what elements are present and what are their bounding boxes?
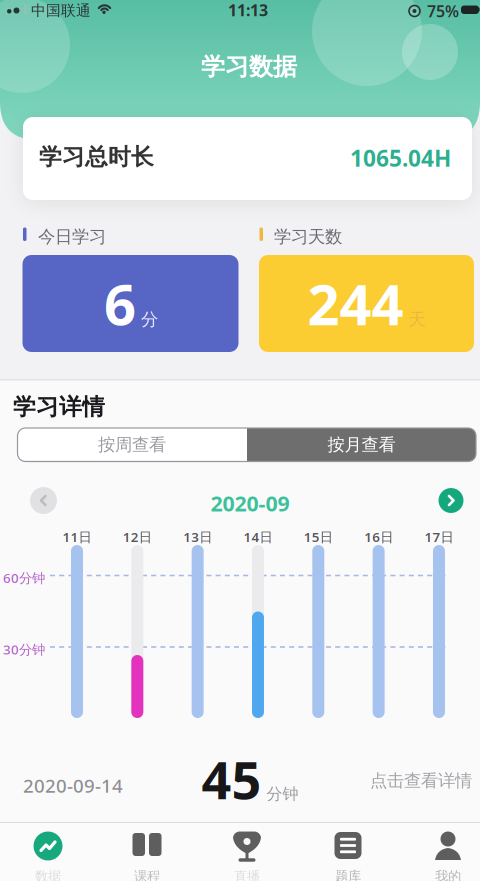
staticText: 11日 [62,528,91,546]
button[interactable]: 题库 [333,831,363,881]
button[interactable]: 244 [259,255,474,352]
staticText: 学习详情 [13,393,105,421]
staticText: 课程 [134,868,160,881]
staticText: 30分钟 [3,640,45,658]
button[interactable]: 点击查看详情 [370,770,472,791]
staticText: 2020-09 [210,489,289,517]
staticText: 11:13 [228,0,268,21]
staticText: 60分钟 [3,569,45,587]
button[interactable]: 按月查看 [247,428,476,461]
staticText: 6 [104,266,136,341]
button[interactable]: Next month [438,488,463,513]
staticText: 点击查看详情 [370,770,472,791]
staticText: 13日 [183,528,212,546]
staticText: 17日 [424,528,453,546]
staticText: 数据 [35,868,61,881]
staticText: 分钟 [266,784,298,804]
staticText: 244 [307,266,403,341]
staticText: 按周查看 [98,434,166,455]
staticText: 12日 [123,528,152,546]
button[interactable]: 按周查看 [17,428,246,461]
button[interactable]: 学习总时长 [23,117,472,200]
staticText: 45 [201,744,261,814]
staticText: 天 [408,309,425,330]
staticText: 75% [427,0,459,22]
staticText: 1065.04H [350,143,451,173]
staticText: 学习天数 [274,226,342,247]
staticText: 15日 [304,528,333,546]
staticText: 今日学习 [38,226,106,247]
staticText: 学习总时长 [39,143,154,171]
staticText: 中国联通 [31,1,91,19]
staticText: 14日 [243,528,272,546]
button[interactable]: 我的 [433,831,463,881]
staticText: 直播 [234,868,260,881]
staticText: 按月查看 [327,434,395,455]
staticText: 学习数据 [201,52,297,81]
button[interactable]: Previous month [30,487,57,514]
button[interactable]: 6 [22,255,238,352]
button[interactable]: 数据 [33,831,63,881]
staticText: 我的 [435,868,461,881]
staticText: 题库 [335,868,361,881]
staticText: 2020-09-14 [23,773,123,798]
button[interactable]: 直播 [232,831,262,881]
staticText: 分 [141,309,158,330]
button[interactable]: 课程 [132,831,162,881]
staticText: 16日 [364,528,393,546]
